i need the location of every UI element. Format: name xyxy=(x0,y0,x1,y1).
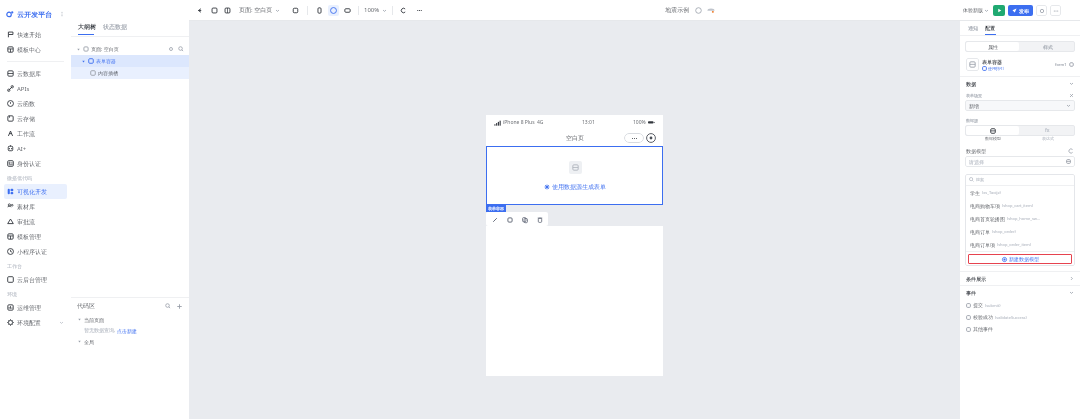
button[interactable]: 云数据库 xyxy=(4,66,67,81)
staticText: 工作流 xyxy=(17,130,35,138)
button[interactable]: 云后台管理 xyxy=(4,272,67,287)
button[interactable]: More xyxy=(1050,5,1061,16)
button[interactable]: 运维管理 xyxy=(4,300,67,315)
staticText: 配置 xyxy=(985,25,995,31)
button[interactable]: Close xyxy=(646,133,656,143)
button[interactable]: 模板中心 xyxy=(4,42,67,57)
button[interactable]: 小程序认证 xyxy=(4,244,67,259)
button[interactable]: 提交 xyxy=(960,299,1080,311)
button[interactable]: 内容插槽 xyxy=(71,67,189,79)
button[interactable]: 审批流 xyxy=(4,214,67,229)
button[interactable]: Refresh xyxy=(398,5,409,16)
button[interactable]: 新建数据模型 xyxy=(968,254,1072,264)
button[interactable]: Layout xyxy=(505,215,514,224)
button[interactable]: Menu xyxy=(624,133,644,143)
button[interactable]: AI+ xyxy=(4,141,67,156)
staticText: 数据 xyxy=(966,81,976,87)
other: Search xyxy=(178,46,184,52)
staticText: 运维管理 xyxy=(17,304,41,312)
button[interactable]: 数据 xyxy=(960,77,1080,90)
button[interactable]: Layers xyxy=(209,5,220,16)
staticText: 表达式 xyxy=(1042,136,1054,141)
button[interactable]: Preview xyxy=(993,5,1005,16)
button[interactable]: 新增 xyxy=(965,100,1075,111)
button[interactable]: 使用数据源生成表单 xyxy=(544,183,606,191)
other: Search code xyxy=(165,303,171,309)
button[interactable]: Edit xyxy=(490,215,499,224)
button[interactable]: Phone view xyxy=(314,5,325,16)
button[interactable]: 使用指引 xyxy=(982,66,1004,71)
button[interactable]: 页面: 空白页 xyxy=(71,43,189,55)
button[interactable]: Refresh models xyxy=(1068,148,1074,154)
button[interactable]: 云开发平台 xyxy=(0,6,71,22)
button[interactable]: 使用数据源生成表单 xyxy=(486,146,663,205)
button[interactable]: 素材库 xyxy=(4,199,67,214)
button[interactable]: 全局 xyxy=(71,336,189,347)
button[interactable]: 电商订单项 xyxy=(965,238,1075,251)
button[interactable]: 点击新建 xyxy=(117,328,137,334)
staticText: 全局 xyxy=(84,339,94,345)
button[interactable]: 条件展示 xyxy=(960,272,1080,285)
button[interactable]: 样式 xyxy=(1020,41,1075,52)
staticText: 条件展示 xyxy=(966,276,986,282)
button[interactable]: Settings xyxy=(1036,5,1047,16)
button[interactable]: 电商首页轮播图 xyxy=(965,212,1075,225)
button[interactable]: 校验成功 xyxy=(960,311,1080,323)
button[interactable]: 云函数 xyxy=(4,96,67,111)
button[interactable]: APIs xyxy=(4,81,67,96)
button[interactable]: 大纲树 xyxy=(78,23,96,31)
staticText: 代码区 xyxy=(77,302,95,310)
button[interactable]: 电商购物车项 xyxy=(965,199,1075,212)
button[interactable]: Desktop view xyxy=(342,5,353,16)
staticText: 通知 xyxy=(968,25,978,31)
staticText: 云后台管理 xyxy=(17,276,47,284)
button[interactable]: 请选择 xyxy=(965,156,1075,167)
staticText: 新建数据模型 xyxy=(1009,256,1039,262)
staticText: 可视化开发 xyxy=(17,188,47,196)
button[interactable]: Delete xyxy=(535,215,544,224)
staticText: 状态数据 xyxy=(103,23,127,31)
button[interactable]: 快速开始 xyxy=(4,27,67,42)
button[interactable]: 页面: 空白页 xyxy=(239,6,280,14)
button[interactable]: 环境配置 xyxy=(4,315,67,330)
button[interactable]: 模板管理 xyxy=(4,229,67,244)
staticText: 快速开始 xyxy=(17,31,41,39)
button[interactable]: Copy page xyxy=(290,5,301,16)
staticText: 4G xyxy=(537,119,544,126)
button[interactable]: 体验新版 xyxy=(963,7,983,13)
button[interactable]: Copy xyxy=(520,215,529,224)
button[interactable]: More xyxy=(414,5,425,16)
button[interactable]: 当前页面 xyxy=(71,314,189,325)
button[interactable]: 学生 xyxy=(965,186,1075,199)
button[interactable]: 表单容器 xyxy=(71,55,189,67)
staticText: 大纲树 xyxy=(78,23,96,31)
button[interactable]: 属性 xyxy=(966,42,1019,51)
staticText: 云存储 xyxy=(17,115,35,123)
button[interactable]: Info xyxy=(693,5,704,16)
button[interactable]: Grid xyxy=(222,5,233,16)
staticText: 新增 xyxy=(969,103,979,109)
button[interactable]: 可视化开发 xyxy=(4,184,67,199)
staticText: 内容插槽 xyxy=(98,70,118,76)
button[interactable]: Copy id xyxy=(1069,62,1074,67)
button[interactable]: 配置 xyxy=(985,25,995,31)
button[interactable]: 通知 xyxy=(968,25,978,31)
button[interactable]: 云存储 xyxy=(4,111,67,126)
other: Settings xyxy=(168,46,174,52)
button[interactable]: 发布 xyxy=(1008,5,1033,16)
staticText: 模板中心 xyxy=(17,46,41,54)
staticText: 页面: 空白页 xyxy=(239,6,273,14)
button[interactable]: 事件 xyxy=(960,286,1080,299)
button[interactable]: 100% xyxy=(364,6,387,14)
staticText: 样式 xyxy=(1043,44,1053,50)
button[interactable]: 其他事件 xyxy=(960,323,1080,335)
button[interactable]: 电商订单 xyxy=(965,225,1075,238)
staticText: 点击新建 xyxy=(117,328,137,334)
button[interactable]: 工作流 xyxy=(4,126,67,141)
button[interactable]: Responsive xyxy=(328,5,339,16)
button[interactable] xyxy=(966,126,1019,135)
button[interactable]: fx xyxy=(1020,125,1075,136)
button[interactable]: Back xyxy=(194,5,205,16)
button[interactable]: 身份认证 xyxy=(4,156,67,171)
button[interactable]: 状态数据 xyxy=(103,23,127,31)
